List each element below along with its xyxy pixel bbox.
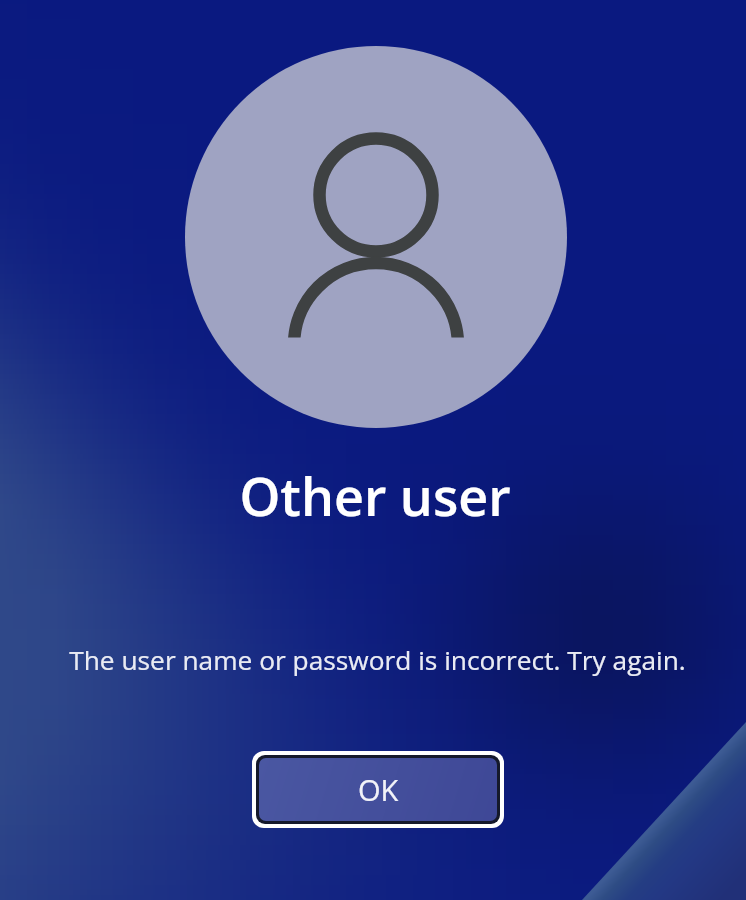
staticText: Other user (239, 460, 511, 531)
staticText: The user name or password is incorrect. … (69, 642, 686, 678)
button[interactable]: OK (259, 758, 497, 821)
staticText: OK (358, 770, 399, 809)
button[interactable]: Other user account picture (185, 46, 567, 428)
